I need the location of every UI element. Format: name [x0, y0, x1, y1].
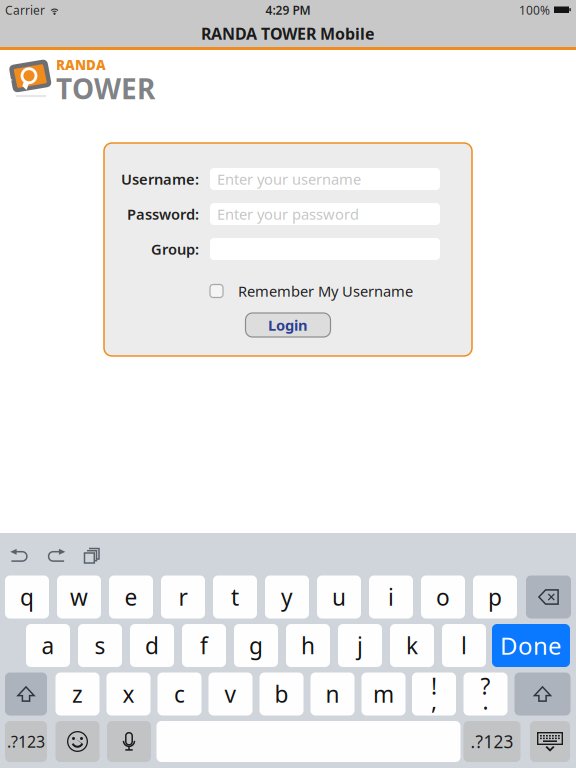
staticText: s	[94, 630, 105, 660]
button[interactable]: Shift	[5, 672, 47, 715]
staticText: l	[461, 630, 467, 660]
staticText: j	[357, 630, 363, 660]
staticText: .?123	[470, 730, 513, 753]
button[interactable]: f	[182, 624, 226, 667]
button[interactable]: x	[106, 672, 150, 715]
button[interactable]: e	[109, 575, 153, 618]
button[interactable]: w	[57, 575, 101, 618]
button[interactable]: n	[310, 672, 354, 715]
button[interactable]: j	[338, 624, 382, 667]
staticText: w	[70, 582, 88, 612]
staticText: n	[325, 679, 339, 709]
staticText: Enter your username	[217, 169, 361, 189]
button[interactable]: Enter your password	[210, 203, 440, 225]
staticText: a	[41, 630, 54, 660]
staticText: u	[332, 582, 346, 612]
button[interactable]: !	[412, 672, 456, 715]
button[interactable]: Enter your username	[210, 168, 440, 190]
staticText: r	[178, 582, 187, 612]
staticText: g	[249, 630, 263, 660]
button[interactable]: p	[473, 575, 517, 618]
button[interactable]: h	[286, 624, 330, 667]
button[interactable]: Emoji	[55, 721, 99, 762]
staticText: i	[388, 582, 394, 612]
button[interactable]: r	[161, 575, 205, 618]
staticText: c	[174, 679, 185, 709]
staticText: y	[281, 582, 293, 612]
staticText: TOWER	[56, 70, 155, 107]
staticText: ?	[480, 671, 490, 701]
staticText: Enter your password	[217, 204, 359, 224]
button[interactable]: d	[130, 624, 174, 667]
button[interactable]: u	[317, 575, 361, 618]
staticText: Username:	[121, 169, 199, 189]
button[interactable]: Redo	[39, 536, 74, 578]
staticText: ,	[431, 686, 437, 716]
staticText: 4:29 PM	[265, 2, 310, 18]
staticText: z	[72, 679, 83, 709]
button[interactable]: l	[442, 624, 486, 667]
staticText: k	[406, 630, 418, 660]
staticText: o	[436, 582, 450, 612]
button[interactable]: z	[55, 672, 99, 715]
staticText: b	[274, 679, 288, 709]
staticText: Group:	[151, 239, 199, 259]
staticText: v	[224, 679, 236, 709]
staticText: !	[431, 671, 437, 701]
button[interactable]: .?123	[5, 721, 47, 762]
staticText: 100%	[519, 2, 550, 18]
button[interactable]: Undo	[3, 536, 39, 578]
staticText: p	[488, 582, 502, 612]
button[interactable]: Copy	[74, 536, 109, 578]
staticText: e	[124, 582, 137, 612]
staticText: .	[482, 686, 488, 716]
button[interactable]: s	[78, 624, 122, 667]
button[interactable]: k	[390, 624, 434, 667]
button[interactable]: Done	[492, 624, 570, 667]
button[interactable]: Login	[245, 313, 330, 337]
button[interactable]: y	[265, 575, 309, 618]
staticText: h	[301, 630, 315, 660]
staticText: t	[231, 582, 239, 612]
button[interactable]: Delete	[526, 575, 571, 618]
button[interactable]: o	[421, 575, 465, 618]
button[interactable]: q	[5, 575, 49, 618]
button[interactable]: c	[157, 672, 201, 715]
staticText: x	[122, 679, 134, 709]
button[interactable]: t	[213, 575, 257, 618]
button[interactable]: ?	[463, 672, 507, 715]
button[interactable]: m	[361, 672, 405, 715]
button[interactable]: Hide keyboard	[530, 721, 570, 762]
staticText: Carrier	[5, 2, 45, 18]
button[interactable]: Dictate	[107, 721, 151, 762]
staticText: d	[145, 630, 159, 660]
button[interactable]: a	[26, 624, 70, 667]
button[interactable]: g	[234, 624, 278, 667]
staticText: Password:	[127, 204, 199, 224]
staticText: q	[20, 582, 34, 612]
staticText: Login	[268, 315, 308, 335]
button[interactable]: v	[208, 672, 252, 715]
staticText: Remember My Username	[238, 281, 413, 301]
button[interactable]: i	[369, 575, 413, 618]
button[interactable]: b	[259, 672, 303, 715]
staticText: .?123	[7, 731, 45, 752]
staticText: Done	[500, 630, 562, 661]
staticText: RANDA TOWER Mobile	[201, 23, 375, 44]
staticText: RANDA	[56, 56, 106, 74]
button[interactable]: .?123	[463, 721, 520, 762]
button[interactable]: Remember My Username	[210, 282, 413, 300]
staticText: m	[373, 679, 394, 709]
button[interactable]: Shift	[514, 672, 570, 715]
staticText: f	[200, 630, 208, 660]
